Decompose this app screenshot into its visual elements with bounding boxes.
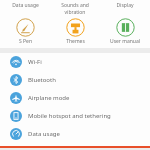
staticText: Display: [116, 2, 134, 9]
staticText: Bluetooth: [28, 76, 56, 84]
staticText: Data usage: [12, 2, 39, 9]
staticText: Wi-Fi: [28, 58, 42, 66]
button[interactable]: User manual: [100, 17, 150, 46]
staticText: User manual: [110, 38, 140, 45]
staticText: Data usage: [28, 130, 60, 138]
button[interactable]: S Pen: [0, 17, 50, 46]
staticText: Airplane mode: [28, 94, 70, 102]
staticText: S Pen: [19, 38, 32, 45]
button[interactable]: Wi-Fi: [0, 53, 150, 71]
button[interactable]: Themes: [50, 17, 100, 46]
staticText: Mobile hotspot and tethering: [28, 112, 111, 120]
button[interactable]: Airplane mode: [0, 89, 150, 107]
staticText: Sounds and vibration: [61, 2, 89, 15]
staticText: Themes: [66, 38, 85, 45]
button[interactable]: Mobile hotspot and tethering: [0, 107, 150, 125]
button[interactable]: Data usage: [0, 125, 150, 143]
button[interactable]: Bluetooth: [0, 71, 150, 89]
